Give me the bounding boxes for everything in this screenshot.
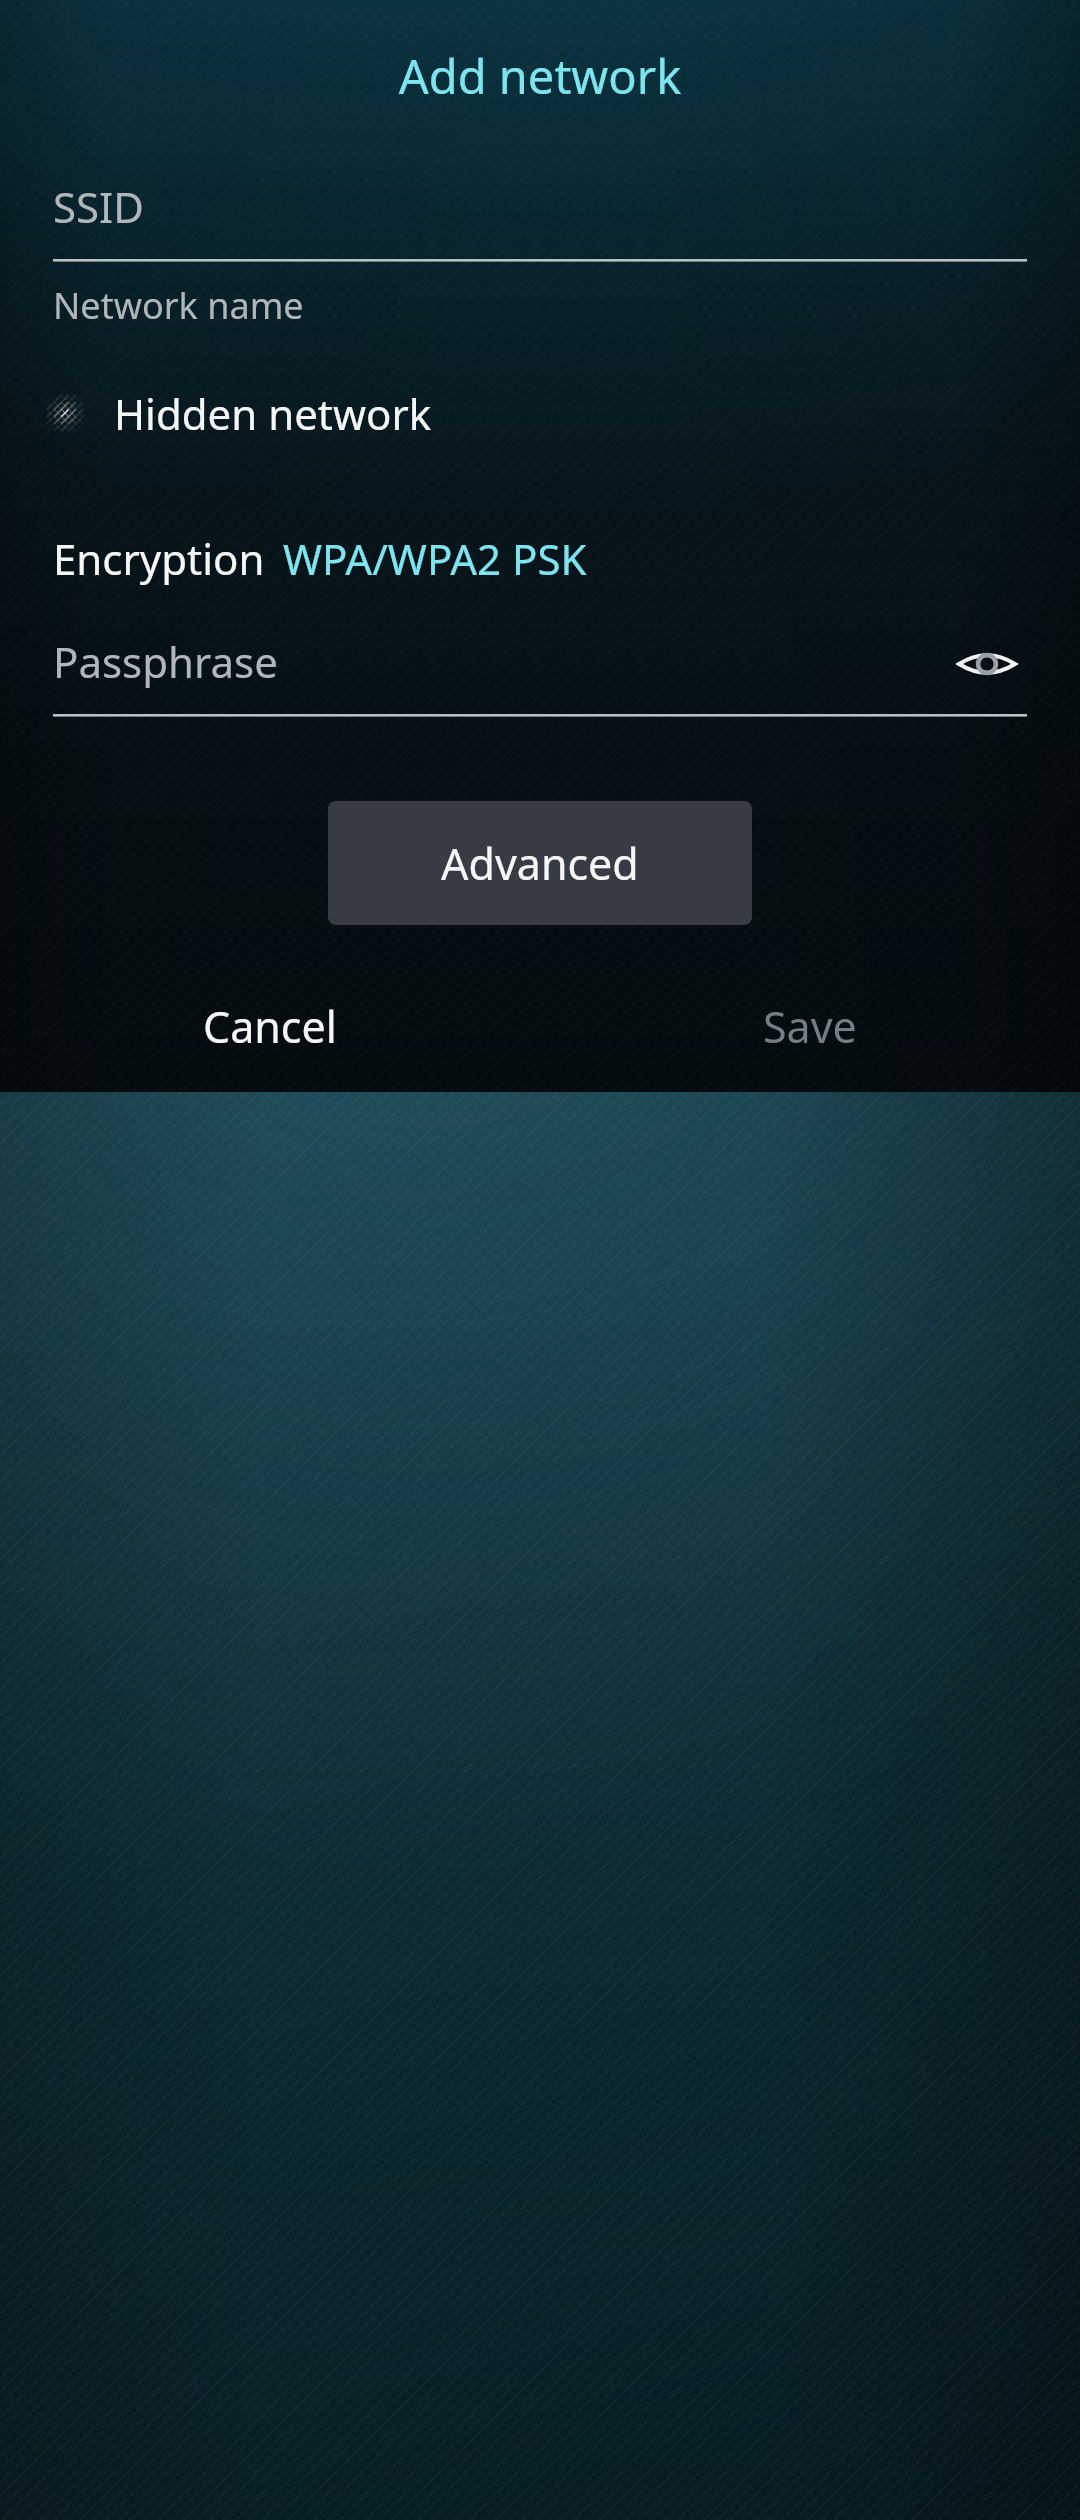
button[interactable]: SSID	[53, 178, 1027, 262]
staticText: Passphrase	[53, 633, 278, 690]
staticText: Cancel	[203, 997, 337, 1056]
staticText: Save	[763, 997, 857, 1056]
staticText: WPA/WPA2 PSK	[283, 530, 587, 587]
staticText: Hidden network	[114, 385, 432, 442]
button[interactable]: Encryption	[53, 521, 587, 595]
button[interactable]: Hidden network	[40, 370, 432, 456]
button[interactable]: Cancel	[0, 960, 540, 1092]
button[interactable]: Advanced	[328, 801, 752, 925]
staticText: Advanced	[441, 834, 639, 893]
staticText: Add network	[0, 44, 1080, 108]
button[interactable]: Show passphrase	[947, 633, 1027, 695]
staticText: Encryption	[53, 530, 265, 587]
button[interactable]: Save	[540, 960, 1080, 1092]
staticText: SSID	[53, 178, 145, 235]
staticText: Network name	[53, 281, 304, 330]
button[interactable]: Passphrase	[53, 633, 1027, 717]
